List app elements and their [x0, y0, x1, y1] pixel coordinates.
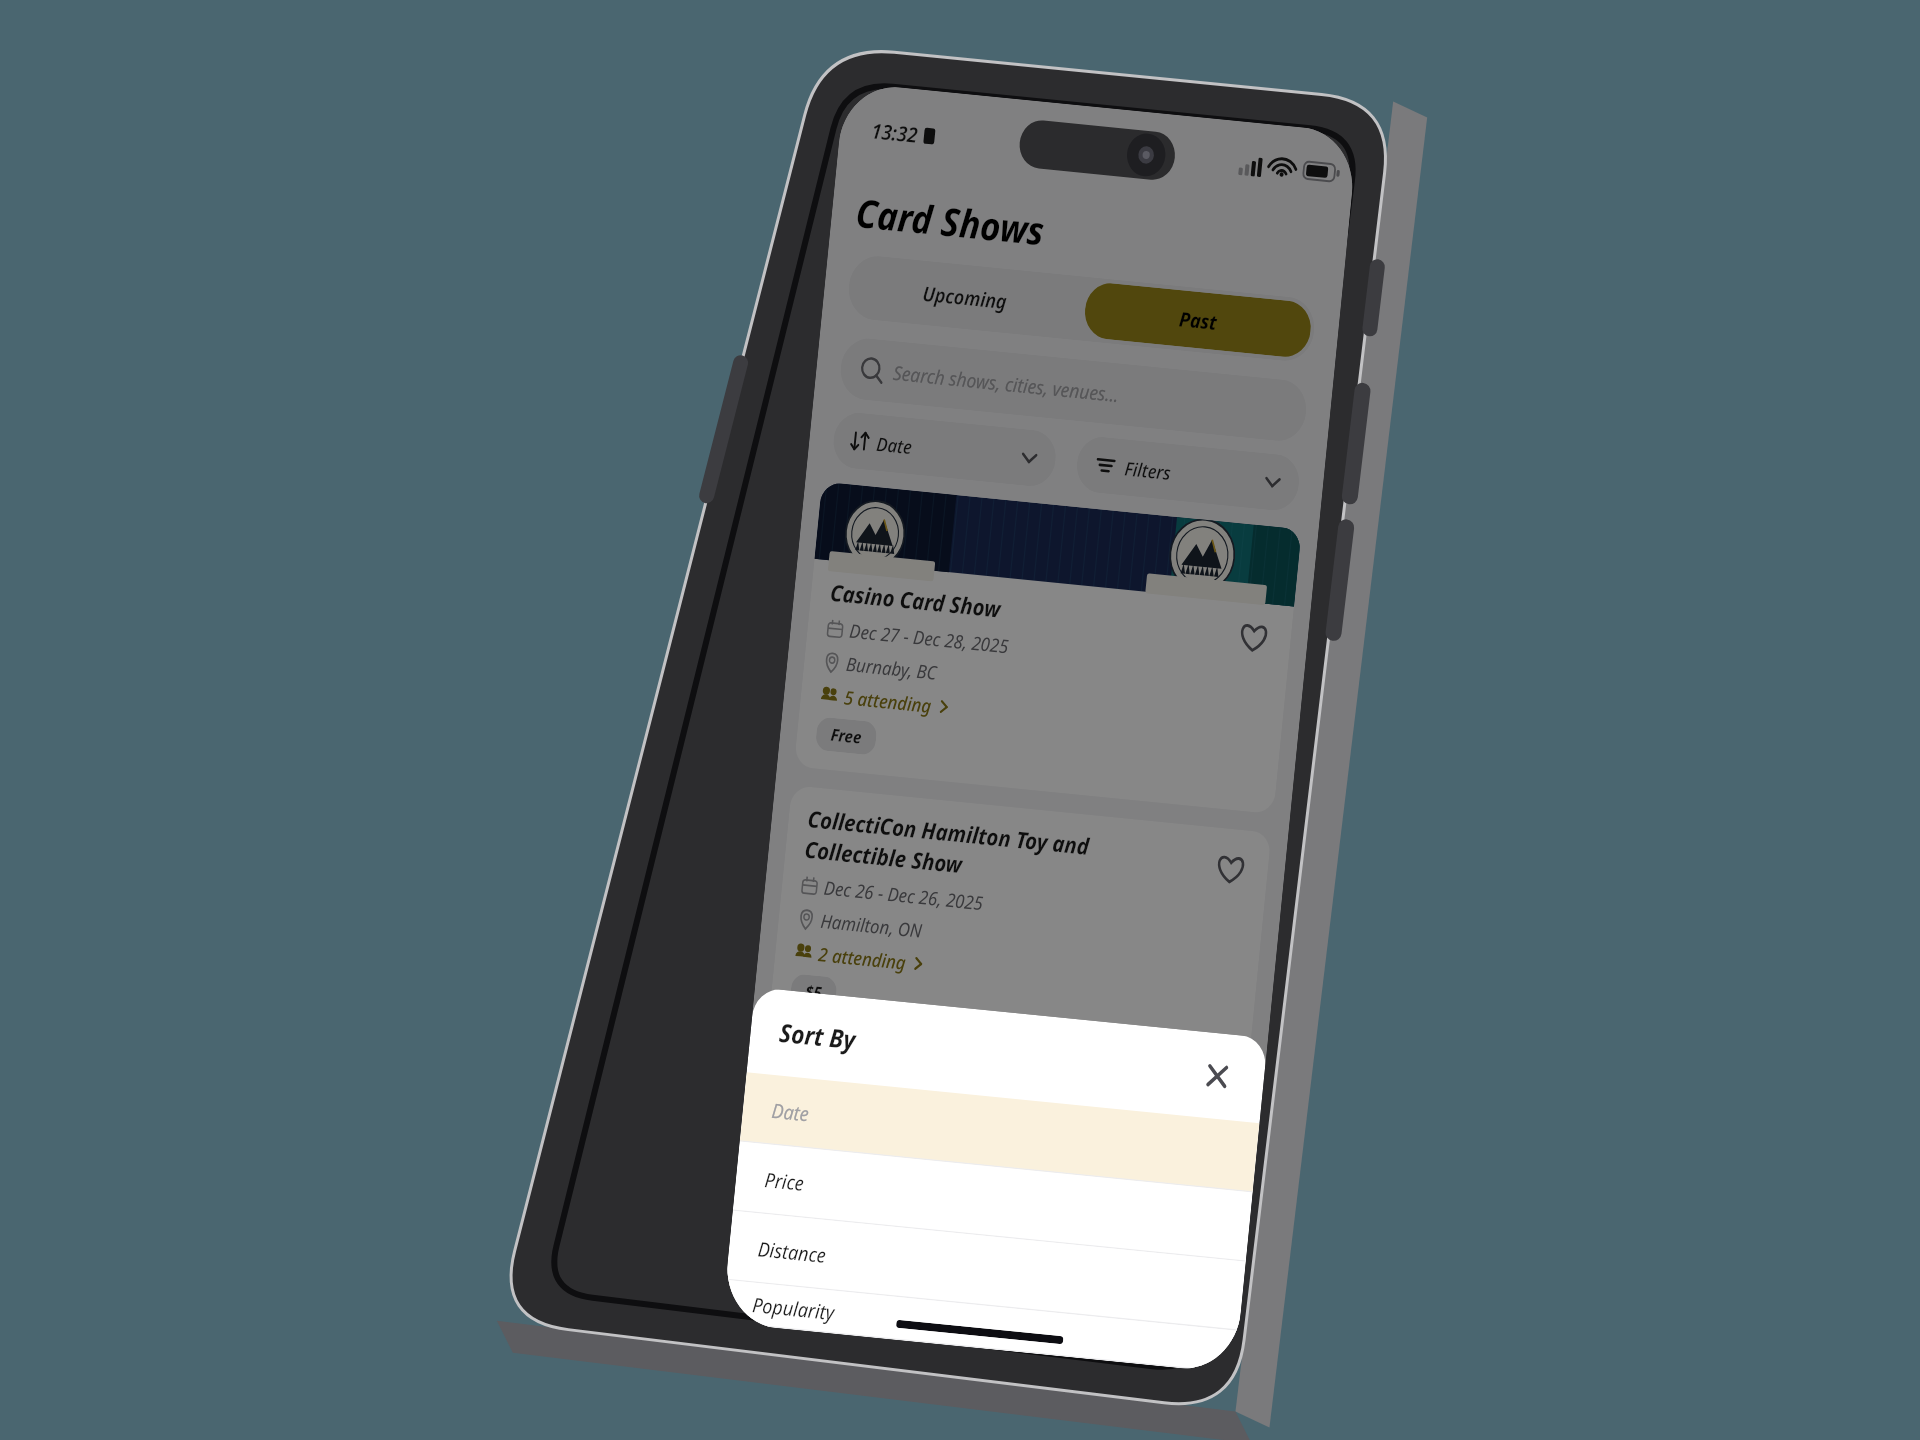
staticText: Distance — [757, 1235, 827, 1268]
button[interactable]: 2 attending — [793, 939, 926, 977]
button[interactable]: Filters — [1074, 435, 1302, 513]
staticText: Popularity — [751, 1291, 836, 1326]
button[interactable]: Close — [1189, 1046, 1245, 1106]
staticText: Upcoming — [921, 279, 1009, 314]
button[interactable]: Casino Card Show — [794, 482, 1302, 814]
staticText: Free — [830, 723, 863, 749]
button[interactable]: Upcoming — [846, 253, 1085, 340]
staticText: Dec 27 - Dec 28, 2025 — [848, 618, 1011, 659]
button[interactable]: Popularity — [722, 1280, 1239, 1373]
staticText: Card Shows — [854, 185, 1047, 256]
button[interactable]: Favorite CollectiCon Hamilton Toy and — [1205, 843, 1256, 898]
staticText: Collectible Show — [803, 834, 964, 880]
staticText: Casino Card Show — [829, 577, 1002, 624]
staticText: Date — [770, 1096, 810, 1127]
button[interactable]: Price — [733, 1141, 1253, 1262]
staticText: Filters — [1123, 455, 1172, 485]
staticText: Date — [875, 431, 914, 459]
staticText: Dec 26 - Dec 26, 2025 — [823, 874, 985, 916]
staticText: 13:32 — [870, 116, 919, 148]
button[interactable]: 5 attending — [819, 682, 952, 720]
staticText: Past — [1178, 305, 1219, 335]
staticText: Burnaby, BC — [845, 651, 938, 685]
staticText: 5 attending — [843, 684, 934, 718]
staticText: Hamilton, ON — [819, 908, 923, 943]
button[interactable]: Date — [740, 1072, 1260, 1192]
staticText: Sort By — [778, 1015, 857, 1057]
button[interactable]: Search shows, cities, venues... — [838, 336, 1309, 443]
button[interactable]: CollectiCon Hamilton Toy and — [768, 785, 1272, 1071]
staticText: CollectiCon Hamilton Toy and — [806, 803, 1091, 862]
button[interactable]: Distance — [726, 1211, 1246, 1331]
staticText: 2 attending — [817, 941, 908, 975]
staticText: $5 — [804, 980, 823, 1004]
button[interactable]: Favorite Casino Card Show — [1228, 611, 1279, 666]
staticText: Search shows, cities, venues... — [892, 358, 1121, 408]
button[interactable]: Date — [831, 410, 1058, 488]
staticText: Price — [763, 1166, 805, 1196]
button[interactable]: Past — [1082, 281, 1313, 359]
